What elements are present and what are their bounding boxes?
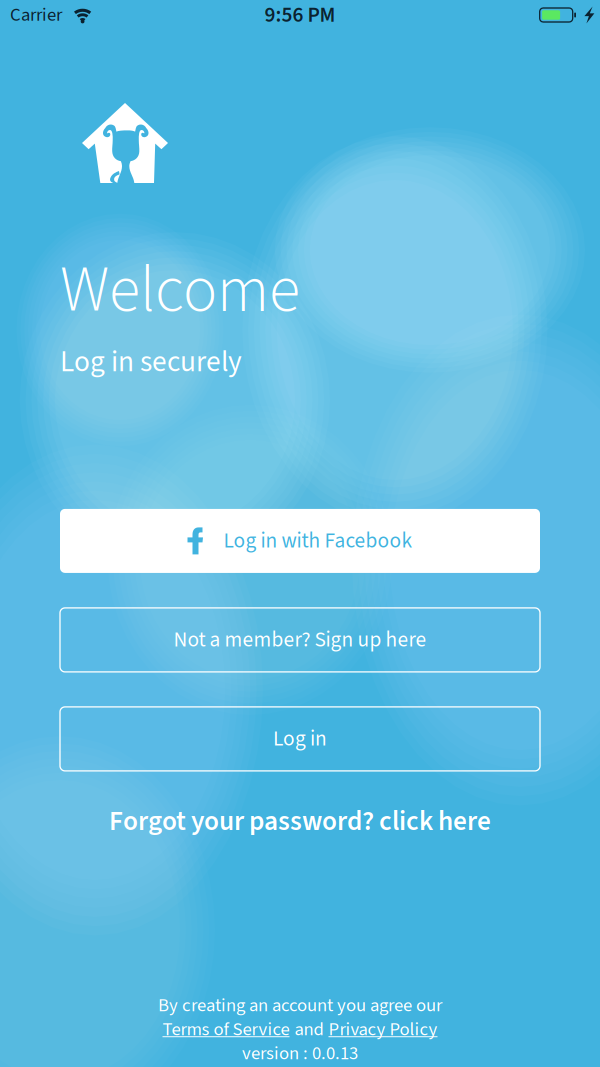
button[interactable]: Log in — [60, 707, 540, 771]
staticText: Carrier — [10, 2, 62, 28]
staticText: Log in securely — [60, 341, 242, 383]
staticText: Terms of Service — [162, 1016, 289, 1043]
staticText: Forgot your password? click here — [109, 802, 491, 841]
staticText: Privacy Policy — [328, 1016, 437, 1043]
staticText: Welcome — [60, 245, 300, 336]
staticText: and — [294, 1016, 323, 1043]
staticText: By creating an account you agree our — [158, 992, 442, 1019]
button[interactable]: Log in with Facebook — [60, 509, 540, 573]
staticText: version : 0.0.13 — [242, 1040, 358, 1067]
button[interactable]: Not a member? Sign up here — [60, 608, 540, 672]
button[interactable]: Privacy Policy — [328, 1016, 437, 1043]
staticText: Log in with Facebook — [223, 526, 412, 556]
staticText: Not a member? Sign up here — [173, 625, 426, 655]
staticText: 9:56 PM — [264, 0, 335, 30]
button[interactable]: Forgot your password? click here — [0, 789, 600, 841]
button[interactable]: Terms of Service — [162, 1016, 289, 1043]
staticText: Log in — [273, 724, 327, 754]
